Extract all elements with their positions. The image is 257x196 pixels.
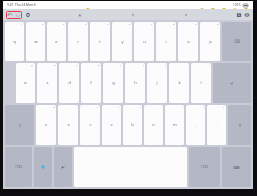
staticText: l	[200, 80, 202, 86]
button[interactable]: ⌫	[222, 22, 251, 61]
staticText: %	[53, 105, 55, 108]
staticText: u	[143, 39, 146, 45]
button[interactable]: 7	[134, 22, 154, 61]
button[interactable]: '	[169, 63, 189, 103]
button[interactable]: 1	[5, 22, 24, 61]
staticText: ?123	[15, 165, 22, 169]
staticText: (	[143, 63, 144, 66]
staticText: +	[97, 105, 99, 108]
staticText: 6	[129, 22, 131, 25]
staticText: *	[120, 63, 122, 66]
button[interactable]: %	[36, 105, 56, 145]
staticText: $	[76, 63, 78, 66]
button[interactable]: &	[81, 63, 101, 103]
button[interactable]: 🎤	[54, 147, 72, 187]
staticText: 5	[107, 22, 109, 25]
button[interactable]: Attachment	[183, 12, 189, 18]
staticText: ;	[161, 105, 162, 108]
staticText: 4	[85, 22, 87, 25]
button[interactable]: ⌨	[222, 147, 251, 187]
button[interactable]: ;	[144, 105, 163, 145]
staticText: r	[77, 39, 79, 45]
staticText: j	[156, 80, 158, 86]
button[interactable]: ?123	[5, 147, 32, 187]
staticText: 9:41 Thu 24 March	[7, 3, 36, 7]
staticText: h	[134, 80, 137, 86]
staticText: t	[99, 39, 101, 45]
staticText: i	[165, 39, 167, 45]
button[interactable]: Paste	[25, 12, 31, 18]
button[interactable]: -	[58, 105, 78, 145]
button[interactable]: 0	[200, 22, 220, 61]
staticText: e	[55, 39, 58, 45]
staticText: c	[89, 122, 92, 128]
button[interactable]: #	[37, 63, 57, 103]
staticText: :	[182, 105, 183, 108]
button[interactable]: 2	[26, 22, 45, 61]
staticText: 9	[195, 22, 197, 25]
staticText: !	[203, 105, 204, 108]
button[interactable]: "	[191, 63, 211, 103]
staticText: 🎤	[61, 165, 65, 169]
button[interactable]: Dismiss keyboard	[244, 12, 250, 18]
button[interactable]: Undo	[7, 12, 13, 18]
staticText: 2	[42, 22, 44, 25]
staticText: ⇧	[18, 123, 22, 128]
button[interactable]: $	[59, 63, 79, 103]
staticText: )	[165, 63, 166, 66]
staticText: '	[187, 63, 188, 66]
staticText: v	[110, 122, 113, 128]
staticText: s	[46, 80, 49, 86]
button[interactable]: Redo	[15, 12, 21, 18]
staticText: 0	[217, 22, 219, 25]
button[interactable]: =	[102, 105, 121, 145]
button[interactable]: 9	[178, 22, 198, 61]
staticText: b	[131, 122, 134, 128]
staticText: ⌨	[233, 165, 240, 170]
staticText: m	[173, 122, 177, 128]
button[interactable]: Text format	[77, 12, 83, 18]
button[interactable]: ?123	[189, 147, 220, 187]
button[interactable]: (	[125, 63, 145, 103]
staticText: .	[216, 122, 218, 128]
staticText: 1	[21, 22, 23, 25]
staticText: n	[152, 122, 155, 128]
button[interactable]: Keyboard layout	[236, 12, 242, 18]
staticText: 3	[63, 22, 65, 25]
staticText: #	[54, 63, 56, 66]
button[interactable]: Checklist	[130, 12, 136, 18]
button[interactable]: )	[147, 63, 167, 103]
staticText: f	[90, 80, 92, 86]
staticText: q	[13, 39, 16, 45]
staticText: k	[178, 80, 181, 86]
button[interactable]: 5	[90, 22, 110, 61]
staticText: 100%	[233, 3, 241, 7]
button[interactable]: /	[123, 105, 142, 145]
staticText: ⌫	[234, 39, 240, 44]
button[interactable]: 🌐	[34, 147, 52, 187]
staticText: 7	[151, 22, 153, 25]
staticText: 8	[173, 22, 175, 25]
staticText: ?	[223, 105, 225, 108]
staticText: o	[187, 39, 190, 45]
button[interactable]: :	[165, 105, 184, 145]
staticText: -	[76, 105, 77, 108]
button[interactable]: 6	[112, 22, 132, 61]
staticText: =	[118, 105, 120, 108]
staticText: @	[31, 63, 34, 66]
staticText: 🌐	[41, 165, 45, 169]
staticText: y	[121, 39, 124, 45]
button[interactable]: 3	[47, 22, 66, 61]
button[interactable]: +	[80, 105, 100, 145]
button[interactable]: 4	[68, 22, 88, 61]
button[interactable]: @	[16, 63, 35, 103]
button[interactable]: *	[103, 63, 123, 103]
staticText: &	[98, 63, 100, 66]
button[interactable]: 8	[156, 22, 176, 61]
